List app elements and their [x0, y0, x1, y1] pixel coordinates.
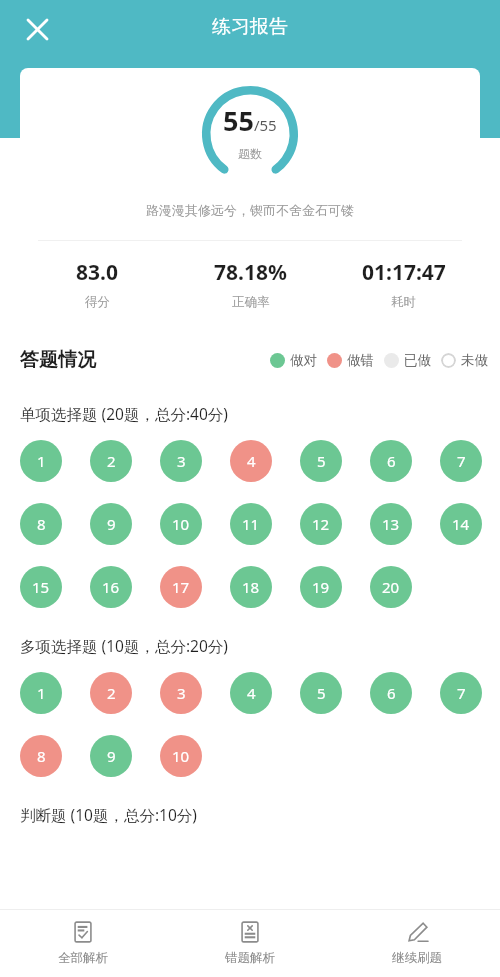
staticText: 6: [387, 451, 396, 471]
button[interactable]: 17: [160, 566, 202, 608]
button[interactable]: 做对: [270, 352, 317, 369]
button[interactable]: 3: [160, 440, 202, 482]
staticText: 题数: [238, 146, 262, 161]
staticText: 3: [177, 683, 186, 703]
staticText: 多项选择题 (10题，总分:20分): [20, 635, 228, 656]
button[interactable]: 7: [440, 440, 482, 482]
button[interactable]: 11: [230, 503, 272, 545]
staticText: 1: [37, 451, 46, 471]
button[interactable]: 18: [230, 566, 272, 608]
staticText: 12: [312, 514, 330, 534]
button[interactable]: 7: [440, 672, 482, 714]
staticText: 11: [242, 514, 260, 534]
staticText: 做对: [290, 352, 317, 369]
button[interactable]: 5: [300, 440, 342, 482]
staticText: 78.18%: [214, 258, 287, 287]
staticText: 5: [317, 451, 326, 471]
staticText: 8: [37, 746, 46, 766]
button[interactable]: 16: [90, 566, 132, 608]
button[interactable]: 继续刷题: [333, 910, 500, 977]
staticText: 3: [177, 451, 186, 471]
button[interactable]: 做错: [327, 352, 374, 369]
button[interactable]: 5: [300, 672, 342, 714]
button[interactable]: 2: [90, 440, 132, 482]
staticText: 全部解析: [58, 950, 108, 966]
staticText: 已做: [404, 352, 431, 369]
staticText: 9: [107, 514, 116, 534]
staticText: 未做: [461, 352, 488, 369]
staticText: 练习报告: [0, 15, 500, 39]
staticText: 20: [382, 577, 400, 597]
staticText: 2: [107, 451, 116, 471]
staticText: 9: [107, 746, 116, 766]
staticText: 路漫漫其修远兮，锲而不舍金石可镂: [146, 202, 354, 218]
button[interactable]: 14: [440, 503, 482, 545]
button[interactable]: 3: [160, 672, 202, 714]
staticText: 1: [37, 683, 46, 703]
staticText: 单项选择题 (20题，总分:40分): [20, 403, 228, 424]
staticText: 耗时: [391, 294, 416, 310]
button[interactable]: 20: [370, 566, 412, 608]
button[interactable]: 2: [90, 672, 132, 714]
staticText: 7: [457, 451, 466, 471]
staticText: 答题情况: [20, 348, 96, 372]
button[interactable]: 已做: [384, 352, 431, 369]
button[interactable]: 错题解析: [166, 910, 333, 977]
button[interactable]: 8: [20, 503, 62, 545]
staticText: 得分: [85, 294, 110, 310]
staticText: 19: [312, 577, 330, 597]
staticText: 01:17:47: [362, 258, 446, 287]
button[interactable]: 8: [20, 735, 62, 777]
button[interactable]: 9: [90, 503, 132, 545]
button[interactable]: 4: [230, 440, 272, 482]
button[interactable]: 13: [370, 503, 412, 545]
button[interactable]: 15: [20, 566, 62, 608]
staticText: 2: [107, 683, 116, 703]
staticText: 继续刷题: [392, 950, 442, 966]
staticText: 16: [102, 577, 120, 597]
staticText: 83.0: [76, 258, 118, 287]
staticText: 做错: [347, 352, 374, 369]
button[interactable]: Close: [14, 6, 60, 52]
staticText: 判断题 (10题，总分:10分): [20, 804, 197, 825]
staticText: 错题解析: [225, 950, 275, 966]
staticText: 15: [32, 577, 50, 597]
button[interactable]: 1: [20, 672, 62, 714]
staticText: 14: [452, 514, 470, 534]
button[interactable]: 全部解析: [0, 910, 166, 977]
staticText: 10: [172, 746, 190, 766]
button[interactable]: 4: [230, 672, 272, 714]
staticText: 17: [172, 577, 190, 597]
staticText: 4: [247, 451, 256, 471]
button[interactable]: 未做: [441, 352, 488, 369]
button[interactable]: 12: [300, 503, 342, 545]
staticText: 55/55: [223, 102, 277, 139]
staticText: 6: [387, 683, 396, 703]
staticText: 18: [242, 577, 260, 597]
staticText: 8: [37, 514, 46, 534]
staticText: 13: [382, 514, 400, 534]
button[interactable]: 10: [160, 503, 202, 545]
staticText: 7: [457, 683, 466, 703]
button[interactable]: 6: [370, 672, 412, 714]
staticText: 10: [172, 514, 190, 534]
button[interactable]: 9: [90, 735, 132, 777]
button[interactable]: 1: [20, 440, 62, 482]
staticText: 正确率: [232, 294, 270, 310]
staticText: 5: [317, 683, 326, 703]
staticText: 4: [247, 683, 256, 703]
button[interactable]: 19: [300, 566, 342, 608]
button[interactable]: 6: [370, 440, 412, 482]
button[interactable]: 10: [160, 735, 202, 777]
